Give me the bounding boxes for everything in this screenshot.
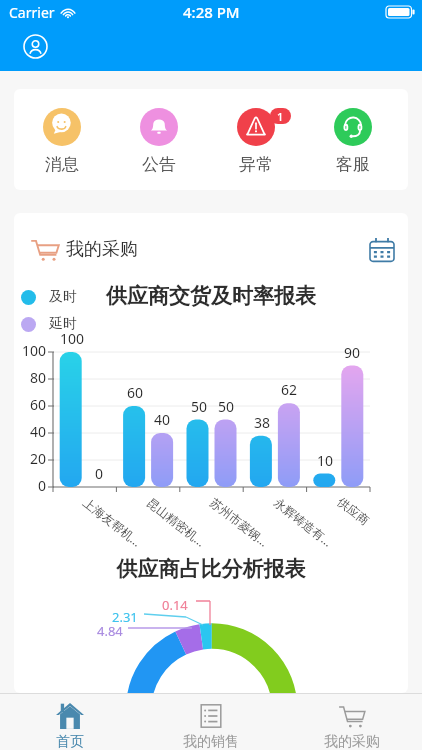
staticText: 供应商 bbox=[335, 494, 372, 528]
button[interactable]: Account bbox=[23, 34, 48, 59]
staticText: 2.31 bbox=[112, 608, 138, 626]
button[interactable]: 消息 bbox=[14, 89, 110, 190]
staticText: Carrier bbox=[9, 3, 55, 22]
staticText: 供应商占比分析报表 bbox=[14, 556, 408, 582]
staticText: 40 bbox=[146, 410, 178, 429]
staticText: 我的采购 bbox=[66, 238, 138, 261]
button[interactable]: 客服 bbox=[304, 89, 401, 190]
staticText: 4.84 bbox=[97, 622, 123, 640]
staticText: 62 bbox=[273, 380, 305, 399]
staticText: 苏州市菱钢... bbox=[207, 494, 272, 550]
staticText: 昆山精密机... bbox=[144, 494, 209, 550]
staticText: 50 bbox=[183, 397, 215, 416]
button[interactable]: 我的采购 bbox=[281, 694, 422, 750]
staticText: 延时 bbox=[49, 315, 77, 333]
staticText: 我的销售 bbox=[183, 733, 239, 750]
staticText: 消息 bbox=[45, 154, 79, 175]
staticText: 公告 bbox=[142, 154, 176, 175]
staticText: 上海友帮机... bbox=[80, 494, 145, 550]
staticText: 38 bbox=[246, 413, 278, 432]
button[interactable]: 首页 bbox=[0, 694, 140, 750]
staticText: 及时 bbox=[49, 288, 77, 306]
staticText: 100 bbox=[14, 341, 46, 360]
staticText: 0.14 bbox=[162, 596, 188, 614]
staticText: 供应商交货及时率报表 bbox=[14, 283, 408, 309]
staticText: 60 bbox=[14, 395, 46, 414]
staticText: 0 bbox=[83, 464, 115, 483]
staticText: 20 bbox=[14, 449, 46, 468]
staticText: 100 bbox=[56, 329, 88, 348]
staticText: 40 bbox=[14, 422, 46, 441]
button[interactable]: Calendar bbox=[367, 235, 397, 265]
staticText: 异常 bbox=[239, 154, 273, 175]
staticText: 我的采购 bbox=[324, 733, 380, 750]
staticText: 50 bbox=[210, 397, 242, 416]
staticText: 0 bbox=[14, 476, 46, 495]
staticText: 10 bbox=[309, 451, 341, 470]
staticText: 60 bbox=[119, 383, 151, 402]
staticText: 80 bbox=[14, 368, 46, 387]
button[interactable]: 公告 bbox=[110, 89, 207, 190]
staticText: 1 bbox=[277, 109, 284, 124]
staticText: 90 bbox=[336, 343, 368, 362]
button[interactable]: 1 bbox=[207, 89, 304, 190]
button[interactable]: 我的销售 bbox=[140, 694, 281, 750]
staticText: 首页 bbox=[56, 733, 84, 750]
staticText: 4:28 PM bbox=[183, 2, 240, 22]
staticText: 永辉铸造有... bbox=[271, 494, 336, 550]
staticText: 客服 bbox=[336, 154, 370, 175]
